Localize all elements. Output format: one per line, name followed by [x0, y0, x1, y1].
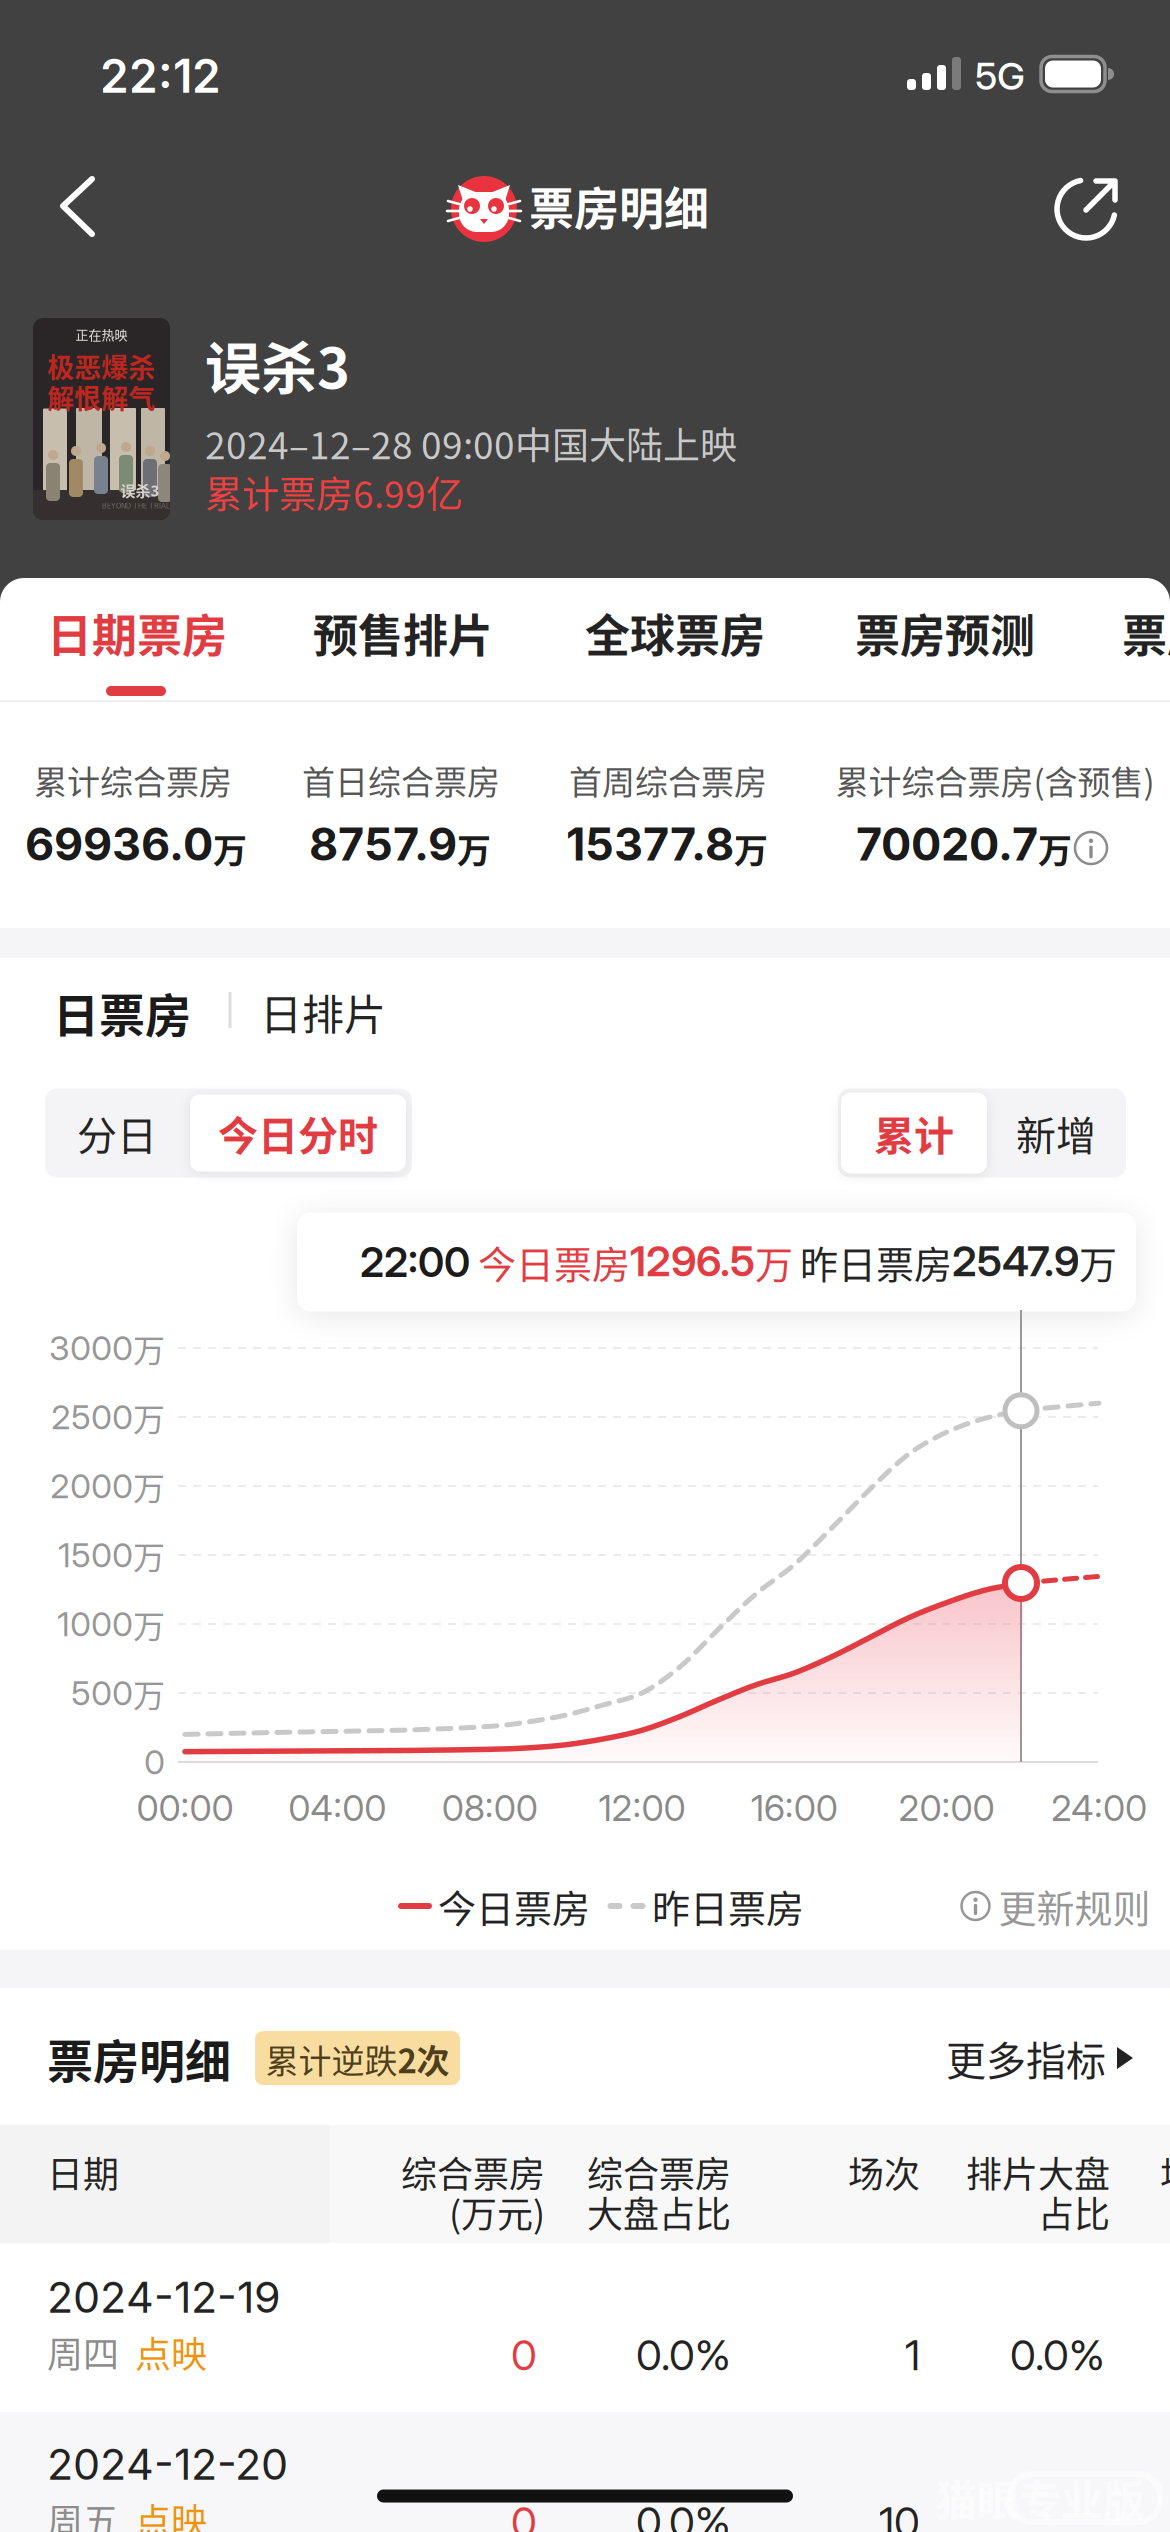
staticText: 日期 [47, 2146, 119, 2198]
button[interactable]: Back [33, 166, 113, 246]
staticText: 15377.8万 [566, 818, 768, 872]
staticText: 误杀3 [205, 323, 350, 405]
staticText: 累计综合票房 [34, 756, 232, 804]
staticText: 16:00 [751, 1786, 838, 1830]
staticText: 0 [511, 2330, 537, 2380]
staticText: 预售排片 [313, 600, 493, 666]
staticText: 更多指标 [946, 2029, 1106, 2087]
staticText: 500万 [71, 1670, 165, 1716]
button[interactable]: 预售排片 [313, 585, 493, 681]
staticText: 日排片 [260, 982, 386, 1042]
staticText: 排片大盘 [966, 2146, 1110, 2198]
staticText: 日期票房 [47, 600, 227, 666]
staticText: 首周综合票房 [569, 756, 767, 804]
button[interactable]: 说明 [1073, 830, 1109, 866]
staticText: 1000万 [57, 1601, 165, 1647]
staticText: 累计逆跌2次 [265, 2035, 449, 2082]
staticText: 票房走势 [1122, 600, 1170, 666]
button[interactable]: 更新规则 [959, 1878, 1150, 1934]
staticText: 10 [879, 2497, 920, 2532]
staticText: 2024-12-19 [47, 2271, 281, 2323]
staticText: 昨日票房2547.9万 [800, 1235, 1117, 1289]
staticText: 分日 [77, 1104, 157, 1162]
staticText: 今日票房 [438, 1878, 590, 1933]
staticText: 04:00 [288, 1786, 386, 1830]
button[interactable]: 今日分时 [190, 1094, 406, 1171]
button[interactable]: 累计 [841, 1092, 987, 1173]
staticText: 22:12 [100, 48, 221, 104]
staticText: 今日分时 [218, 1104, 378, 1162]
button[interactable]: 全球票房 [585, 585, 765, 681]
staticText: 24:00 [1051, 1786, 1147, 1830]
staticText: 误杀3 [120, 479, 159, 501]
staticText: 5G [975, 53, 1025, 99]
staticText: 昨日票房 [652, 1878, 804, 1933]
button[interactable]: 票房预测 [855, 585, 1035, 681]
staticText: 今日票房1296.5万 [478, 1235, 793, 1289]
staticText: 0.0% [636, 2497, 731, 2532]
button[interactable]: 更多指标 [946, 2028, 1134, 2088]
staticText: 票房明细 [47, 2025, 231, 2091]
staticText: 2000万 [50, 1463, 165, 1509]
button[interactable]: 分日 [47, 1088, 187, 1177]
staticText: 2024–12–28 09:00中国大陆上映 [205, 416, 737, 470]
staticText: 1 [905, 2330, 920, 2380]
button[interactable]: 新增 [991, 1088, 1121, 1177]
staticText: (万元) [449, 2186, 545, 2238]
staticText: 首日综合票房 [302, 756, 500, 804]
staticText: 3000万 [49, 1325, 165, 1371]
staticText: 日票房 [53, 979, 191, 1045]
staticText: 08:00 [442, 1786, 538, 1830]
staticText: 0 [144, 1741, 165, 1782]
staticText: 70020.7万 [856, 818, 1072, 872]
staticText: 2500万 [51, 1394, 165, 1440]
staticText: 综合票房 [587, 2146, 731, 2198]
staticText: 正在热映 [75, 325, 127, 343]
button[interactable]: 票房走势 [1122, 585, 1170, 681]
staticText: 全球票房 [585, 600, 765, 666]
staticText: 累计 [874, 1104, 954, 1162]
button[interactable]: 日期票房 [47, 585, 227, 681]
staticText: 综合票房 [401, 2146, 545, 2198]
staticText: 周四 [47, 2326, 119, 2378]
staticText: 场次 [848, 2146, 920, 2198]
staticText: 00:00 [136, 1786, 233, 1830]
staticText: 22:00 [360, 1237, 470, 1287]
staticText: 大盘占比 [587, 2186, 731, 2238]
staticText: 场 [1160, 2146, 1170, 2198]
staticText: 20:00 [899, 1786, 995, 1830]
staticText: 票房明细 [529, 173, 709, 239]
staticText: 周五 [47, 2493, 119, 2532]
staticText: 0.0% [1010, 2330, 1105, 2380]
staticText: 新增 [1016, 1104, 1096, 1162]
staticText: BEYOND THE TRIAL [102, 502, 170, 510]
staticText: 点映 [135, 2493, 207, 2532]
staticText: 1500万 [58, 1532, 165, 1578]
staticText: 8757.9万 [309, 818, 491, 872]
staticText: 累计票房6.99亿 [205, 465, 463, 519]
staticText: 更新规则 [998, 1878, 1150, 1933]
staticText: 2024-12-20 [47, 2438, 288, 2490]
button[interactable]: 日排片 [243, 977, 403, 1047]
staticText: 0.0% [636, 2330, 731, 2380]
staticText: 12:00 [598, 1786, 685, 1830]
staticText: 占比 [1038, 2186, 1110, 2238]
staticText: 69936.0万 [25, 818, 247, 872]
staticText: 点映 [135, 2326, 207, 2378]
staticText: 票房预测 [855, 600, 1035, 666]
button[interactable]: Share [1044, 166, 1128, 250]
staticText: 极恶爆杀 [47, 346, 155, 386]
button[interactable]: 电影海报 [33, 318, 170, 520]
staticText: 累计综合票房(含预售) [835, 756, 1154, 804]
staticText: 0 [511, 2497, 537, 2532]
staticText: 解恨解气 [47, 377, 155, 417]
